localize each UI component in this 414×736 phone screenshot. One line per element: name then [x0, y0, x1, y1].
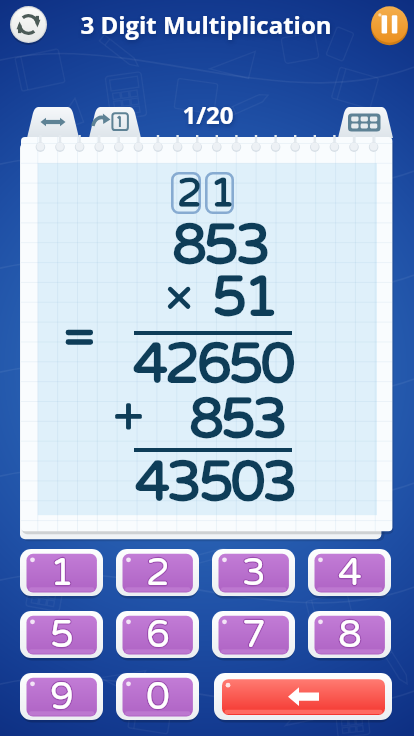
staticText: 9: [50, 674, 74, 720]
staticText: 43503: [135, 449, 295, 516]
staticText: 2: [177, 169, 203, 211]
button[interactable]: 9: [20, 673, 103, 721]
staticText: 6: [146, 612, 170, 658]
button[interactable]: 1: [20, 549, 103, 597]
staticText: 1: [50, 550, 74, 596]
staticText: 2: [146, 550, 170, 596]
button[interactable]: 3: [212, 549, 295, 597]
button[interactable]: 0: [116, 673, 199, 721]
staticText: 3: [242, 550, 266, 596]
staticText: 8: [338, 612, 362, 658]
staticText: 3 Digit Multiplication: [50, 8, 362, 41]
staticText: 9: [50, 674, 74, 720]
staticText: 0: [146, 674, 170, 720]
button[interactable]: 4: [308, 549, 391, 597]
staticText: 1: [210, 169, 236, 211]
staticText: 4: [338, 550, 362, 596]
button[interactable]: Backspace: [214, 673, 392, 721]
staticText: 5: [50, 612, 74, 658]
button[interactable]: 2: [116, 549, 199, 597]
staticText: 0: [146, 674, 170, 720]
staticText: 7: [242, 612, 266, 658]
staticText: 1: [50, 550, 74, 596]
button[interactable]: Grid: [338, 107, 393, 138]
button[interactable]: Restart: [10, 6, 47, 43]
button[interactable]: 7: [212, 611, 295, 659]
staticText: 6: [146, 612, 170, 658]
button[interactable]: 8: [308, 611, 391, 659]
staticText: 853: [189, 386, 285, 453]
staticText: 5: [50, 612, 74, 658]
staticText: 42650: [133, 331, 293, 398]
staticText: 51: [212, 264, 276, 331]
staticText: 853: [172, 212, 268, 279]
staticText: 3: [242, 550, 266, 596]
button[interactable]: Pause: [371, 6, 408, 43]
button[interactable]: Resize: [27, 107, 79, 138]
staticText: 1/20: [1, 98, 414, 131]
button[interactable]: Step: [89, 107, 141, 138]
staticText: 4: [338, 550, 362, 596]
staticText: 2: [146, 550, 170, 596]
staticText: 7: [242, 612, 266, 658]
staticText: 8: [338, 612, 362, 658]
button[interactable]: 6: [116, 611, 199, 659]
button[interactable]: 5: [20, 611, 103, 659]
